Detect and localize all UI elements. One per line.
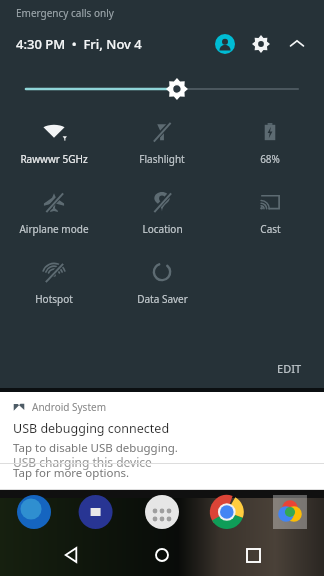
staticText: Flashlight [139, 152, 185, 166]
staticText: Data Saver [137, 292, 188, 306]
staticText: Android System [32, 400, 107, 414]
button[interactable]: USB charging this device [0, 457, 324, 485]
button[interactable]: Settings [246, 29, 276, 59]
staticText: 68% [260, 152, 280, 166]
staticText: USB charging this device [13, 454, 152, 470]
staticText: Cast [260, 222, 281, 236]
button[interactable]: Brightness [26, 76, 298, 102]
button[interactable]: Flashlight [108, 118, 216, 168]
button[interactable]: Cast [216, 188, 324, 238]
button[interactable]: Collapse [282, 29, 312, 59]
button[interactable]: Airplane mode [0, 188, 108, 238]
staticText: EDIT [277, 361, 302, 376]
staticText: Airplane mode [19, 222, 89, 236]
button[interactable]: Location [108, 188, 216, 238]
button[interactable]: EDIT [269, 355, 310, 382]
button[interactable]: 68% [216, 118, 324, 168]
button[interactable]: Recent apps [233, 535, 273, 575]
button[interactable]: Hotspot [0, 258, 108, 308]
staticText: Tap to disable USB debugging. [13, 440, 178, 456]
button[interactable]: Rawwwr 5GHz [0, 118, 108, 168]
staticText: 4:30 PM • Fri, Nov 4 [16, 35, 142, 53]
staticText: Emergency calls only [16, 6, 114, 20]
button[interactable]: User account [210, 29, 240, 59]
staticText: Location [142, 222, 183, 236]
staticText: Hotspot [35, 292, 73, 306]
button[interactable]: Back [51, 535, 91, 575]
button[interactable]: Home [142, 535, 182, 575]
button[interactable]: Data Saver [108, 258, 216, 308]
staticText: Rawwwr 5GHz [20, 152, 88, 166]
staticText: USB debugging connected [13, 420, 170, 437]
staticText: Tap for more options. [13, 465, 130, 481]
